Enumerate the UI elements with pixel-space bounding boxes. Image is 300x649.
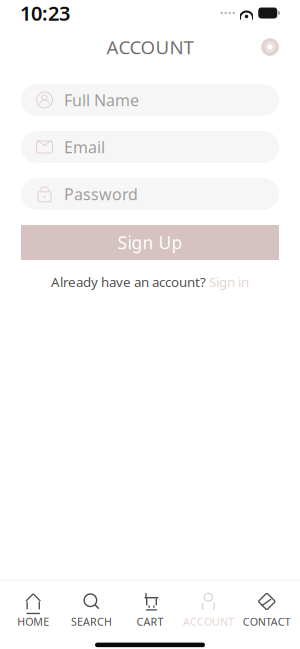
staticText: Sign in [209,273,249,291]
staticText: Sign Up [117,231,182,254]
button[interactable]: HOME [4,586,62,635]
staticText: Full Name [64,89,139,111]
staticText: Password [64,183,138,205]
button[interactable]: ACCOUNT [179,586,238,635]
button[interactable]: CART [121,586,179,635]
button[interactable]: CONTACT [238,586,296,635]
staticText: HOME [17,614,49,629]
button[interactable]: Sign Up [21,225,279,260]
staticText: CART [136,614,163,629]
staticText: Email [64,136,105,158]
button[interactable]: Already have an account? [0,268,300,296]
button[interactable]: Settings [254,31,286,63]
button[interactable]: SEARCH [62,586,121,635]
staticText: ACCOUNT [106,35,193,59]
staticText: ACCOUNT [183,614,234,629]
staticText: 10:23 [20,0,70,26]
staticText: Already have an account? [51,273,206,291]
staticText: SEARCH [71,614,112,629]
staticText: CONTACT [243,614,291,629]
